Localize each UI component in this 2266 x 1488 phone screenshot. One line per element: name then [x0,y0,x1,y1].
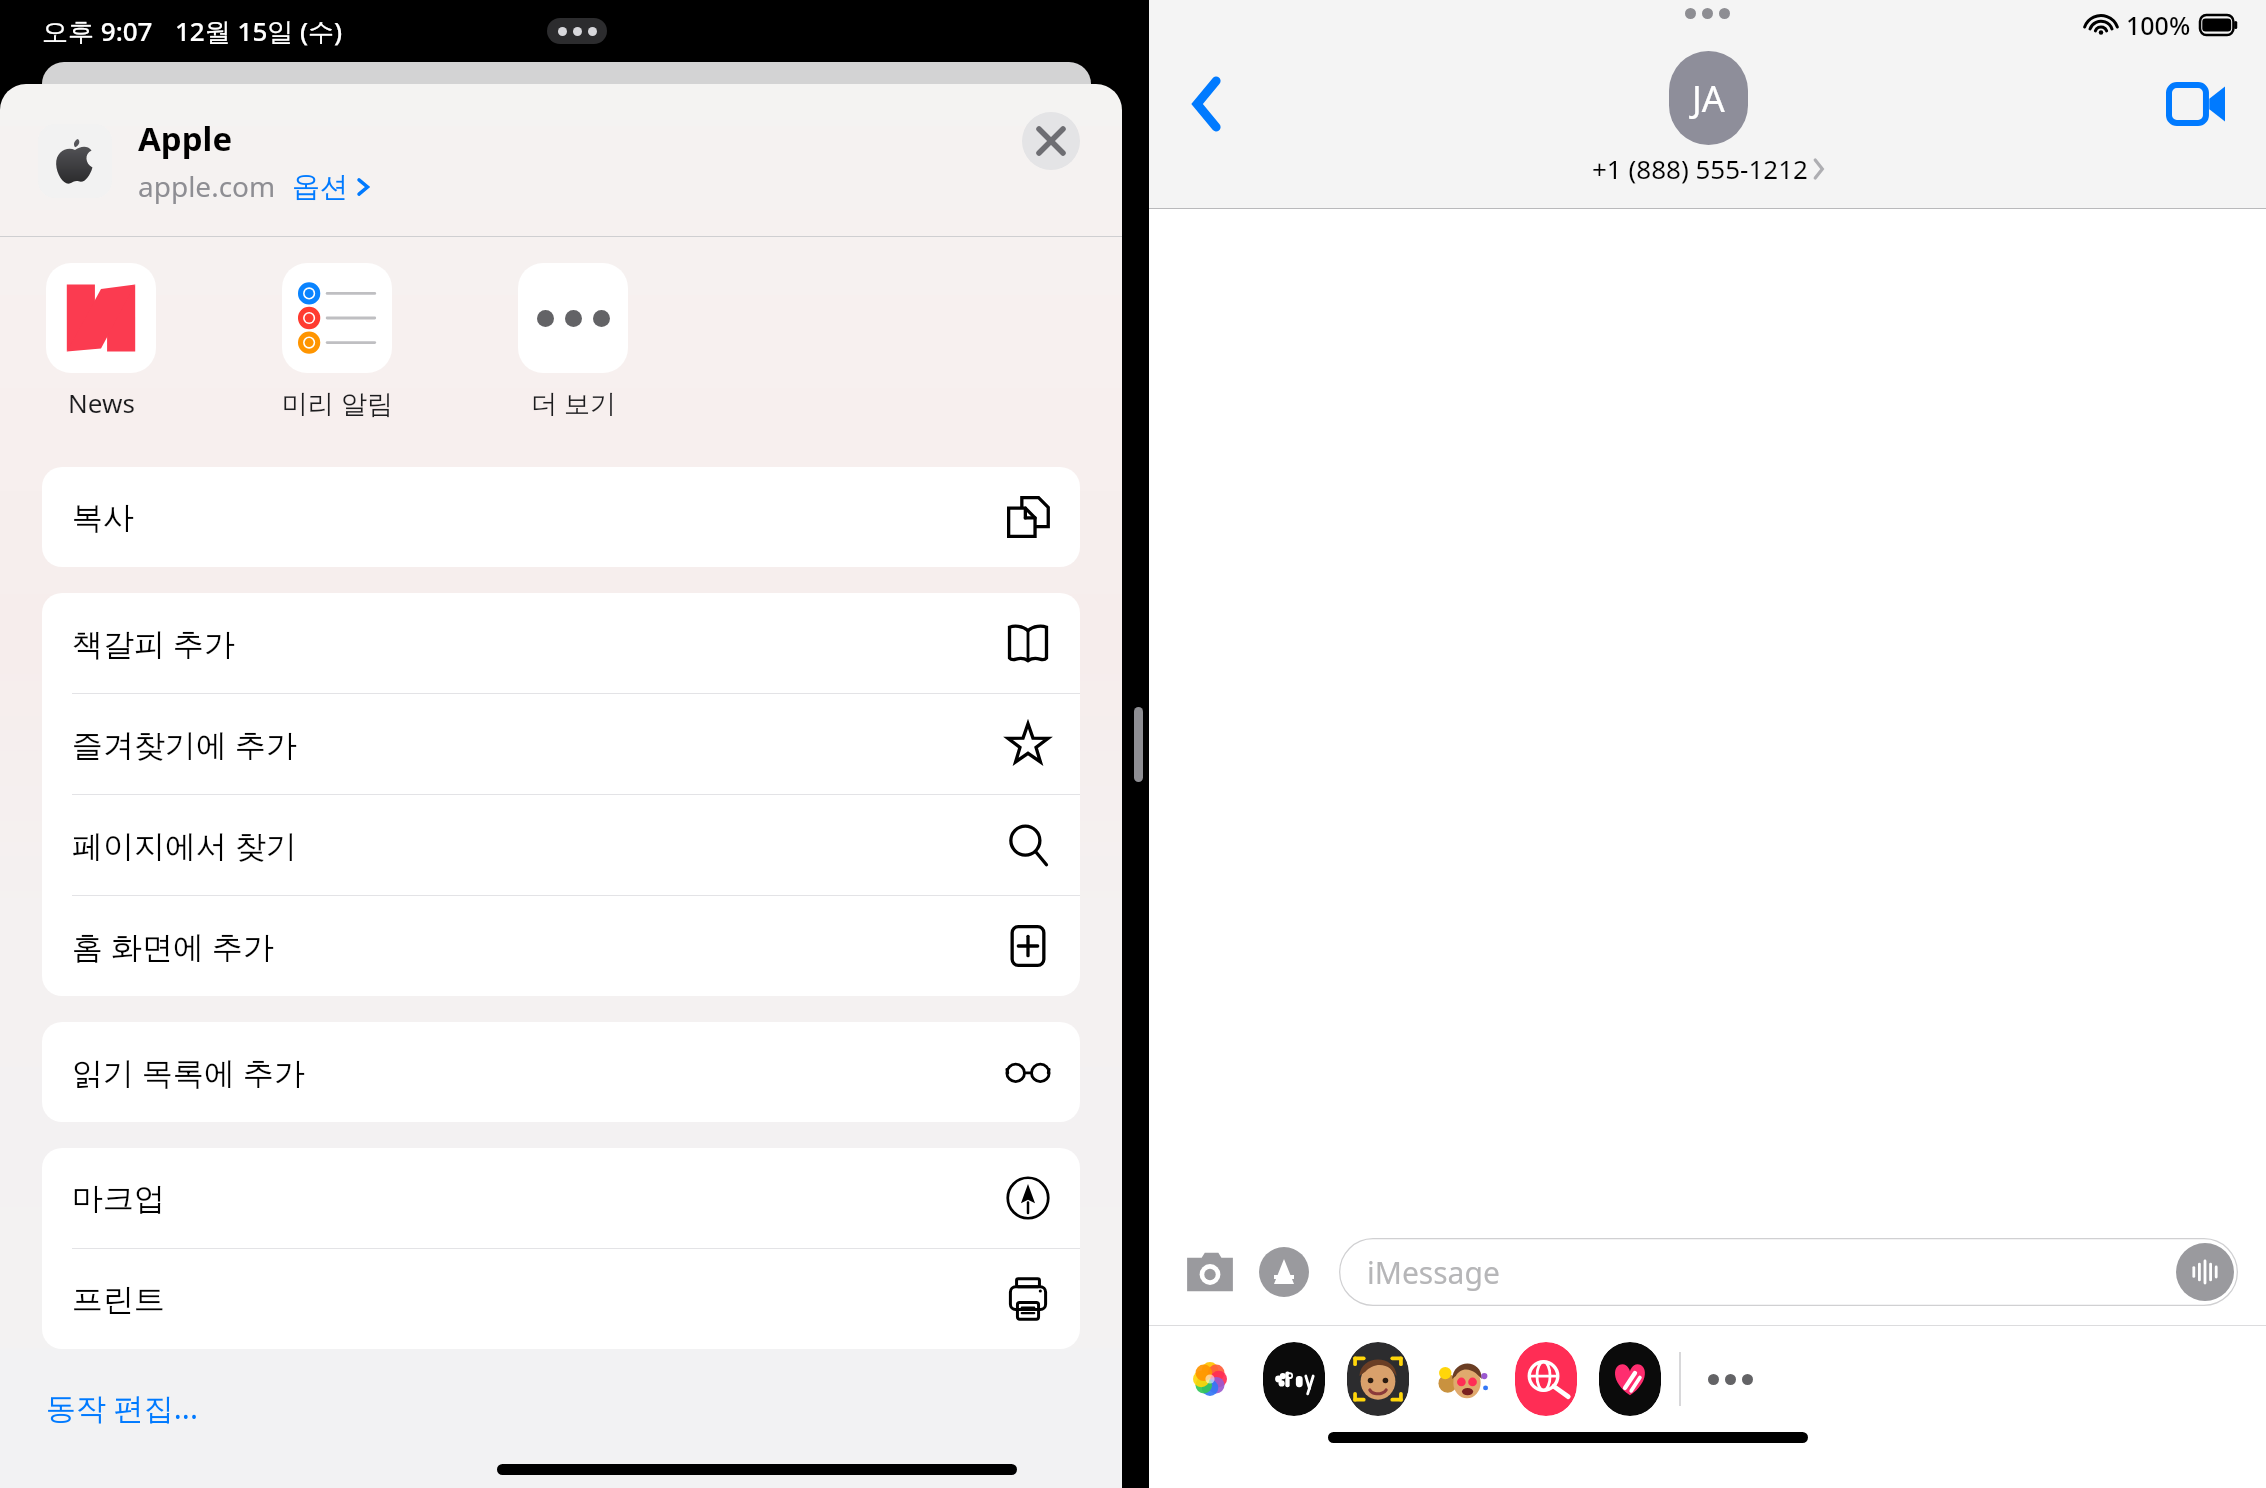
button[interactable]: iMessage [1339,1238,2238,1306]
staticText: JA [1692,74,1725,123]
button[interactable]: 복사 [42,467,1080,567]
button[interactable]: Memoji [1347,1342,1409,1416]
button[interactable]: FaceTime video call [2154,61,2240,147]
staticText: 홈 화면에 추가 [72,925,275,967]
button[interactable]: 즐겨찾기에 추가 [42,694,1080,795]
button[interactable]: 동작 편집... [42,1383,202,1432]
button[interactable]: 옵션 [292,169,371,204]
button[interactable]: Back [1169,66,1245,142]
button[interactable]: 더 보기 [514,263,632,421]
staticText: 100% [2126,8,2191,42]
button[interactable]: 페이지에서 찾기 [42,795,1080,896]
button[interactable]: 프린트 [42,1249,1080,1349]
staticText: 즐겨찾기에 추가 [72,723,298,765]
staticText: 프린트 [72,1280,165,1319]
staticText: 12월 15일 (수) [175,13,343,49]
button[interactable]: App Store [1253,1241,1315,1303]
staticText: 책갈피 추가 [72,622,236,664]
staticText: 읽기 목록에 추가 [72,1051,306,1093]
button[interactable]: 마크업 [42,1148,1080,1249]
button[interactable]: Memoji stickers [1431,1342,1493,1416]
button[interactable]: Close [1022,112,1080,170]
staticText: 페이지에서 찾기 [72,824,298,866]
staticText: iMessage [1367,1252,1500,1293]
staticText: apple.com [138,167,276,205]
button[interactable]: Photos [1179,1342,1241,1416]
staticText: 옵션 [292,169,348,204]
staticText: 마크업 [72,1179,165,1218]
button[interactable]: 홈 화면에 추가 [42,896,1080,996]
button[interactable]: More apps [1699,1342,1761,1416]
button[interactable]: News [42,263,160,420]
button[interactable]: JA [1592,51,1824,186]
button[interactable]: 미리 알림 [278,263,396,421]
button[interactable]: 읽기 목록에 추가 [42,1022,1080,1122]
staticText: 더 보기 [531,385,616,421]
button[interactable]: Digital Touch [1599,1342,1661,1416]
button[interactable]: Camera [1177,1239,1243,1305]
button[interactable]: Multitasking options [547,18,607,44]
staticText: +1 (888) 555-1212 [1592,151,1808,186]
staticText: 오후 9:07 [42,13,153,49]
button[interactable]: 책갈피 추가 [42,593,1080,694]
button[interactable]: Audio message [2176,1243,2234,1301]
staticText: 복사 [72,498,134,537]
button[interactable]: Apple Pay [1263,1342,1325,1416]
staticText: News [68,385,135,420]
button[interactable]: Images [1515,1342,1577,1416]
staticText: 미리 알림 [282,385,393,421]
staticText: Apple [138,116,233,161]
staticText: 동작 편집... [46,1387,198,1428]
